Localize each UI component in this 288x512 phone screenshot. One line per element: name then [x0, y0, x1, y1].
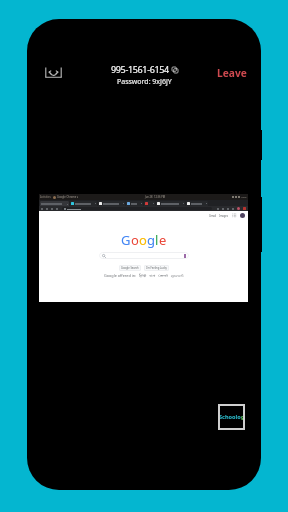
button[interactable]: Browser tab	[126, 201, 143, 206]
button[interactable]: Account	[240, 213, 245, 218]
staticText: Google offered in: हिन्दी বাংলা ਪੰਜਾਬੀ ન…	[104, 273, 184, 278]
staticText: o	[131, 231, 139, 249]
button[interactable]: Copy meeting id	[171, 66, 178, 73]
button[interactable]: Google Search	[119, 265, 141, 271]
staticText: 995-1561-6154	[111, 63, 169, 75]
staticText: 100%	[241, 196, 247, 199]
staticText: Password: 9xJ6jY	[117, 77, 172, 87]
button[interactable]: Browser tab	[144, 201, 155, 206]
button[interactable]: Leave	[214, 64, 250, 82]
staticText: G	[121, 231, 131, 249]
staticText: Google Search	[121, 266, 139, 270]
button[interactable]: Browser tab	[70, 201, 97, 206]
button[interactable]: Schoolog logo	[218, 404, 245, 430]
button[interactable]	[99, 252, 189, 259]
button[interactable]: Browser tab	[186, 201, 208, 206]
staticText: e	[159, 231, 167, 249]
staticText: l	[155, 231, 159, 249]
button[interactable]: Browser tab	[40, 201, 69, 206]
staticText: g	[147, 231, 155, 249]
staticText: Activities	[40, 195, 51, 199]
staticText: I'm Feeling Lucky	[146, 266, 167, 270]
button[interactable]: Share screen	[43, 64, 63, 80]
staticText: Jun 28 12:36 PM	[145, 195, 166, 199]
staticText: Google Chrome ▾	[57, 195, 79, 199]
staticText: Schoolo	[219, 413, 241, 421]
staticText: Leave	[217, 66, 247, 80]
button[interactable]: I'm Feeling Lucky	[144, 265, 169, 271]
button[interactable]: Gmail	[209, 214, 217, 218]
staticText: g	[241, 413, 245, 421]
button[interactable]: Address bar	[62, 207, 212, 210]
button[interactable]: Browser tab	[98, 201, 125, 206]
button[interactable]: Google apps	[232, 213, 237, 218]
button[interactable]: Browser tab	[156, 201, 185, 206]
staticText: o	[139, 231, 147, 249]
button[interactable]: Images	[219, 214, 229, 218]
